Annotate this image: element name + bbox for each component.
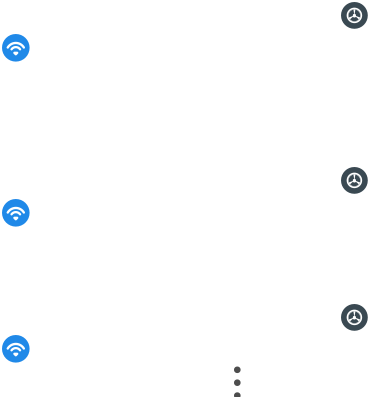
button[interactable]: CarPlay [341,167,368,194]
button[interactable]: Wi-Fi [2,34,30,62]
button[interactable]: CarPlay [341,2,368,29]
button[interactable]: Wi-Fi [2,335,30,363]
button[interactable]: More options [234,366,241,397]
button[interactable]: CarPlay [341,304,368,331]
button[interactable]: Wi-Fi [2,199,30,227]
